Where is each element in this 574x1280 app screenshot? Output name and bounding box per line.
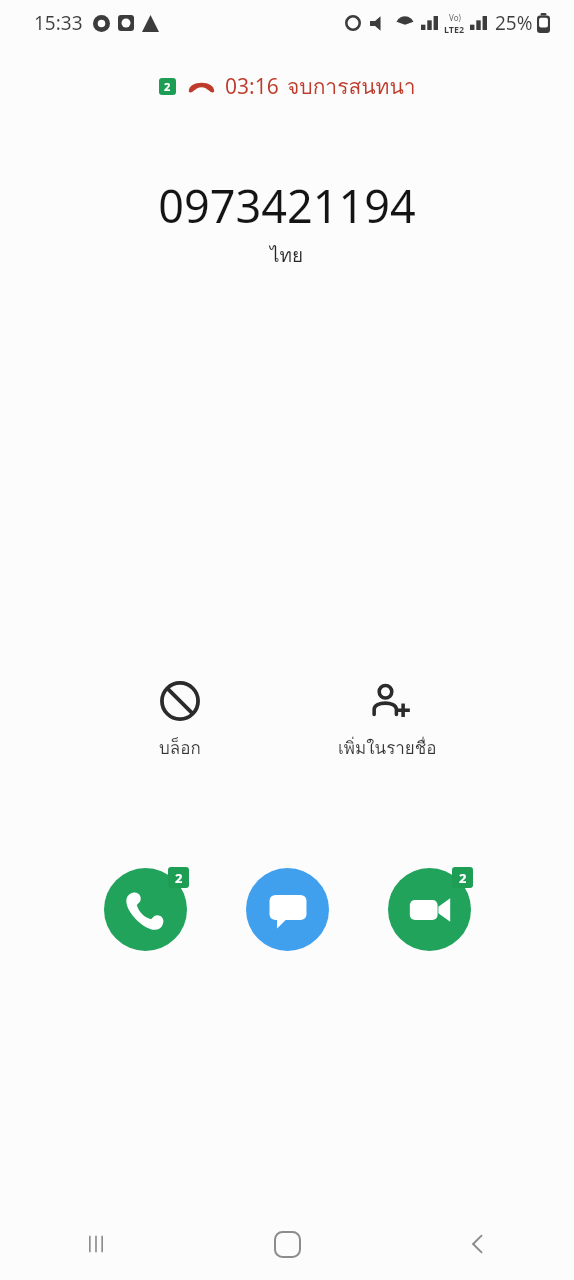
button[interactable]: Message [240, 862, 334, 956]
other: Call ended [188, 79, 215, 95]
staticText: 15:33 [34, 10, 83, 36]
staticText: Vo) [449, 12, 461, 23]
staticText: เพิ่มในรายชื่อ [338, 734, 437, 761]
staticText: 0973421194 [158, 175, 416, 236]
staticText: ไทย [270, 240, 304, 270]
button[interactable]: Home [255, 1212, 319, 1276]
staticText: จบการสนทนา [287, 70, 416, 103]
staticText: 25% [495, 10, 533, 36]
button[interactable]: Video call [382, 862, 476, 956]
staticText: บล็อก [159, 734, 201, 761]
other: Add to contacts [367, 680, 409, 722]
staticText: LTE2 [444, 23, 465, 35]
staticText: 03:16 [225, 72, 279, 101]
button[interactable]: Call [98, 862, 192, 956]
staticText: 2 [459, 869, 467, 887]
other: Block [159, 680, 201, 722]
button[interactable]: Add to contacts [280, 676, 495, 765]
staticText: 2 [175, 869, 183, 887]
button[interactable]: Back [446, 1212, 510, 1276]
button[interactable]: Recents [64, 1212, 128, 1276]
staticText: 2 [164, 79, 171, 94]
button[interactable]: Block [80, 676, 280, 765]
